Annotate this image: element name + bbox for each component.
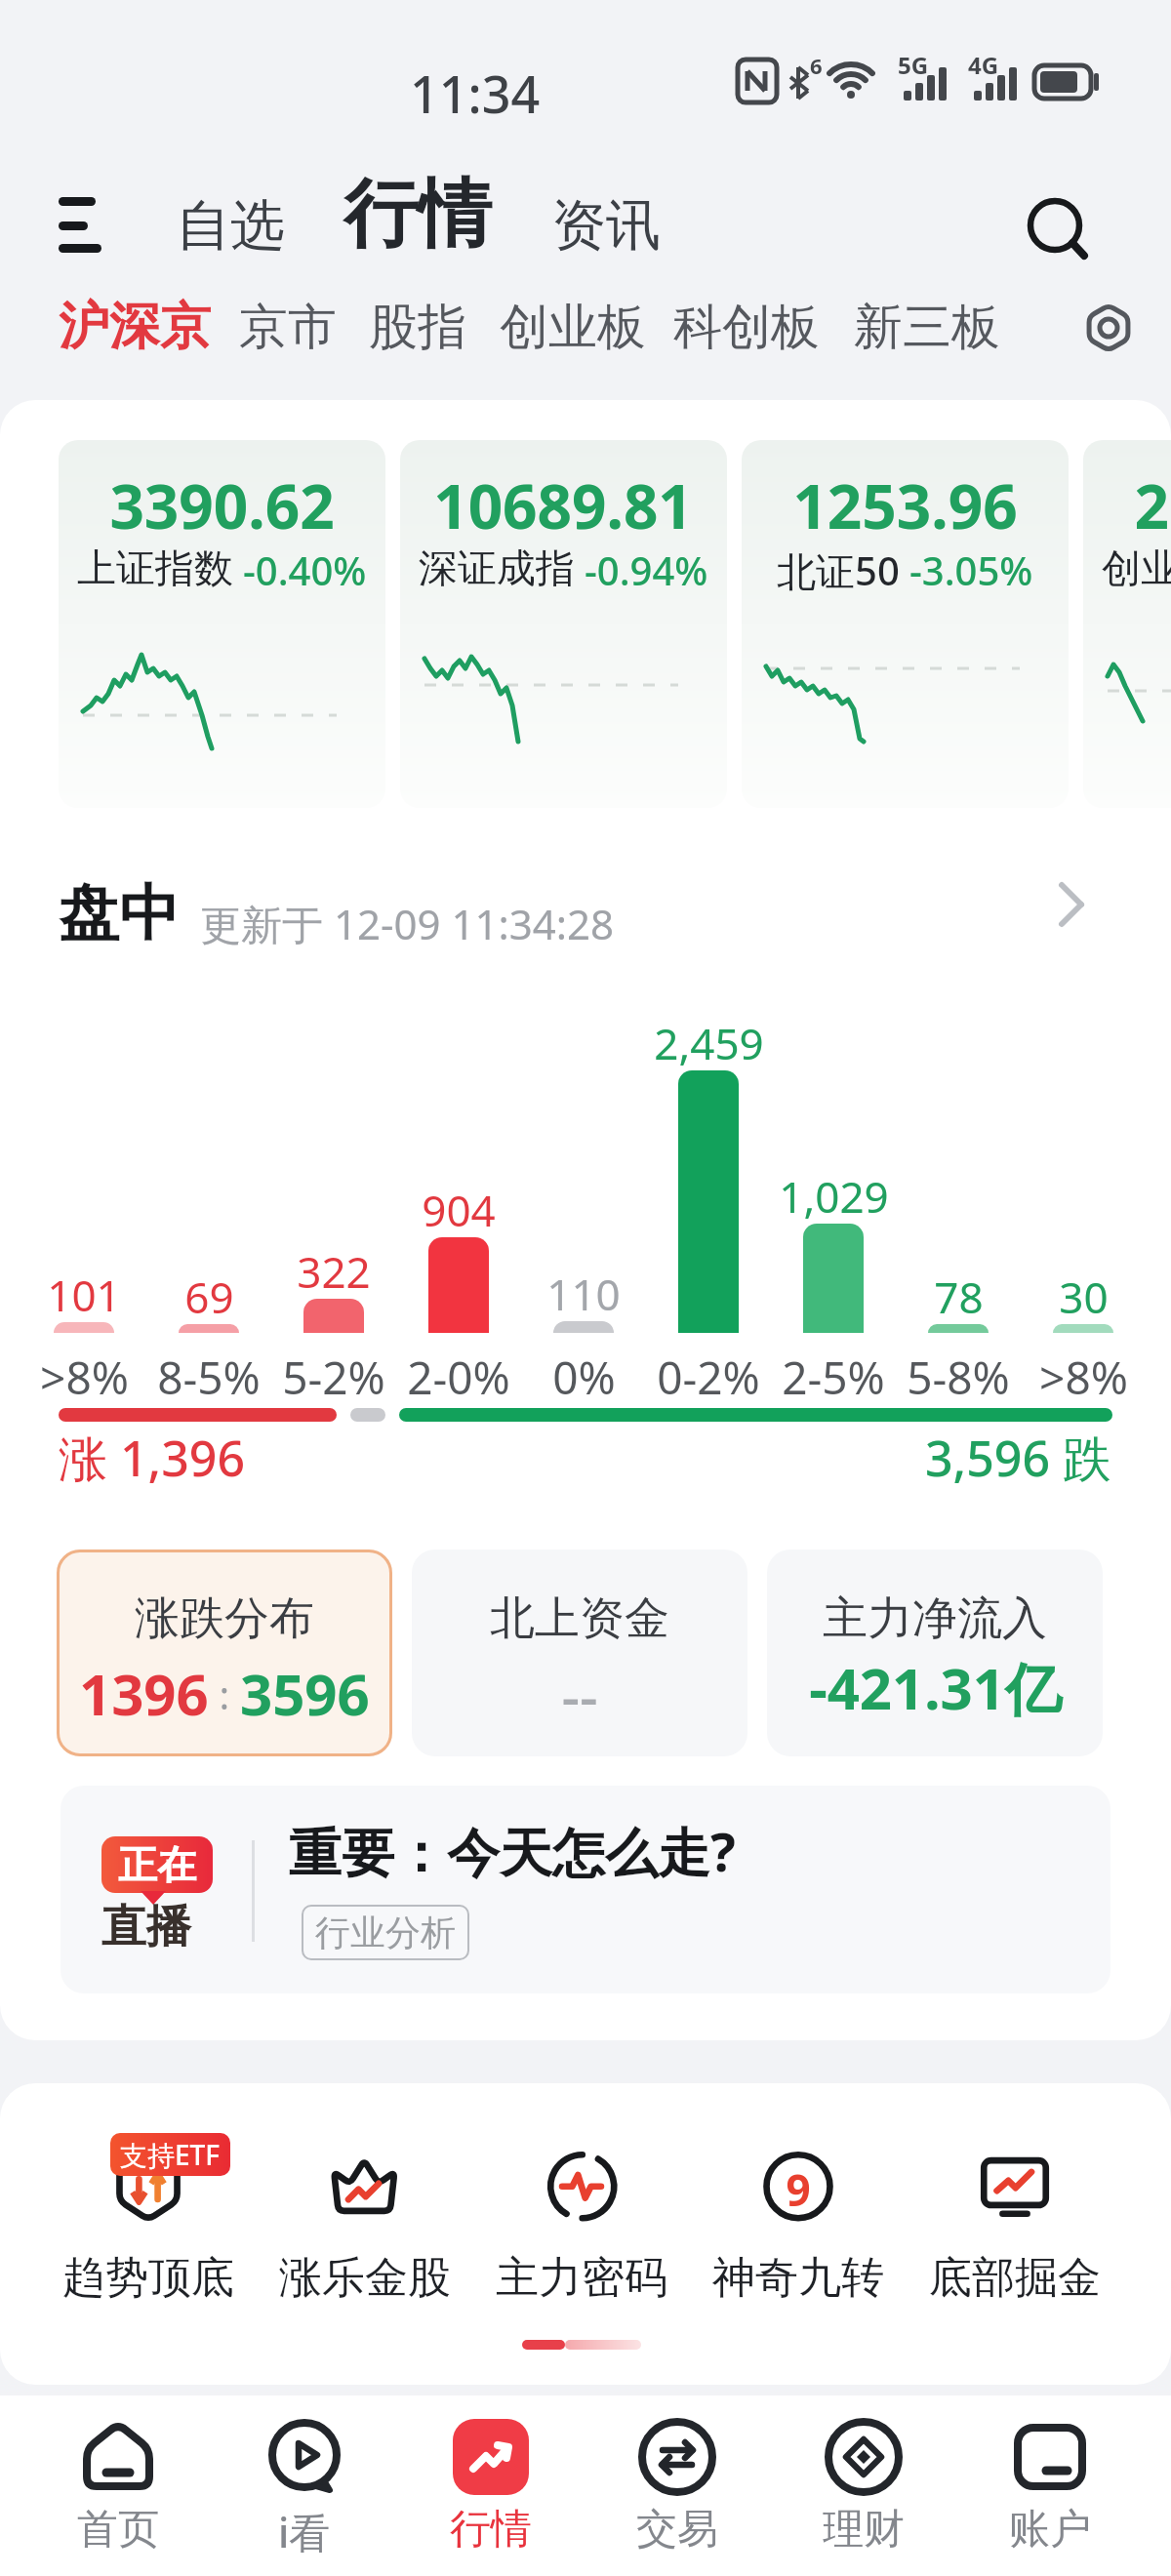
button[interactable]: 趋势顶底	[41, 2122, 256, 2356]
button[interactable]: 首页	[30, 2402, 206, 2573]
staticText: 5-2%	[282, 1347, 385, 1408]
staticText: 交易	[636, 2504, 718, 2556]
button[interactable]: 涨乐金股	[258, 2122, 472, 2356]
staticText: 1,029	[779, 1167, 889, 1226]
button[interactable]: 9	[691, 2122, 906, 2356]
button[interactable]: 1253.96	[742, 440, 1069, 808]
staticText: 2210.11	[1134, 464, 1171, 546]
staticText: 5-8%	[907, 1347, 1010, 1408]
button[interactable]	[1025, 195, 1091, 262]
staticText: 1396	[79, 1655, 209, 1732]
staticText: 创业板指	[1102, 543, 1171, 592]
staticText: i看	[278, 2504, 331, 2559]
staticText: -0.40%	[243, 543, 367, 596]
staticText: 上证指数	[77, 543, 233, 592]
staticText: 69	[184, 1268, 234, 1326]
staticText: 账户	[1009, 2504, 1091, 2556]
staticText: -421.31亿	[809, 1649, 1062, 1726]
staticText: 理财	[823, 2504, 905, 2556]
staticText: 直播	[101, 1899, 191, 1955]
staticText: 涨跌分布	[135, 1590, 314, 1647]
button[interactable]: 主力密码	[474, 2122, 689, 2356]
staticText: 11:34	[410, 59, 541, 128]
staticText: 趋势顶底	[62, 2251, 234, 2305]
staticText: 2,459	[654, 1014, 764, 1072]
staticText: 涨 1,396	[59, 1425, 246, 1491]
staticText: 5G	[898, 49, 929, 81]
button[interactable]: i看	[217, 2402, 392, 2573]
staticText: 正在	[118, 1840, 196, 1889]
staticText: 78	[934, 1268, 984, 1326]
button[interactable]: 行情	[403, 2402, 579, 2573]
staticText: 3596	[240, 1655, 370, 1732]
staticText: 110	[546, 1265, 621, 1323]
button[interactable]: 底部掘金	[908, 2122, 1122, 2356]
staticText: 0%	[552, 1347, 616, 1408]
staticText: 6	[810, 51, 823, 80]
staticText: -3.05%	[909, 543, 1033, 596]
staticText: 3390.62	[109, 464, 335, 546]
staticText: 神奇九转	[712, 2251, 884, 2305]
staticText: >8%	[1039, 1347, 1128, 1408]
staticText: 904	[422, 1181, 496, 1239]
staticText: 深证成指	[419, 543, 575, 592]
staticText: 101	[47, 1266, 121, 1324]
staticText: 更新于 12-09 11:34:28	[200, 896, 615, 951]
button[interactable]: 账户	[962, 2402, 1138, 2573]
staticText: 2-5%	[782, 1347, 885, 1408]
button[interactable]: 交易	[589, 2402, 765, 2573]
staticText: 首页	[77, 2504, 159, 2556]
button[interactable]	[1054, 883, 1093, 926]
staticText: 北证50	[777, 543, 900, 597]
button[interactable]: 正在	[61, 1786, 1110, 1993]
button[interactable]: 2210.11	[1083, 440, 1171, 808]
button[interactable]: 主力净流入	[767, 1550, 1103, 1756]
staticText: 10689.81	[433, 464, 693, 546]
staticText: 主力密码	[496, 2251, 667, 2305]
button[interactable]: 北上资金	[412, 1550, 747, 1756]
staticText: -0.94%	[585, 543, 708, 596]
staticText: >8%	[40, 1347, 129, 1408]
staticText: 3,596 跌	[925, 1425, 1112, 1491]
staticText: 北上资金	[490, 1590, 669, 1647]
staticText: 行业分析	[315, 1911, 456, 1954]
staticText: 1253.96	[792, 464, 1018, 546]
staticText: 8-5%	[157, 1347, 261, 1408]
staticText: 0-2%	[657, 1347, 760, 1408]
button[interactable]	[1085, 302, 1136, 353]
staticText: 9	[786, 2160, 811, 2219]
staticText: 重要：今天怎么走?	[289, 1815, 736, 1887]
button[interactable]: 理财	[776, 2402, 951, 2573]
staticText: --	[561, 1657, 598, 1734]
button[interactable]: 支持ETF	[120, 2136, 221, 2173]
staticText: 322	[297, 1242, 371, 1301]
staticText: 4G	[968, 49, 999, 81]
staticText: :	[209, 1668, 240, 1720]
staticText: 盘中	[59, 875, 180, 951]
button[interactable]: 3390.62	[59, 440, 385, 808]
staticText: 底部掘金	[929, 2251, 1101, 2305]
staticText: 行情	[450, 2504, 532, 2556]
staticText: 主力净流入	[823, 1590, 1047, 1647]
button[interactable]: 10689.81	[400, 440, 727, 808]
staticText: 2-0%	[407, 1347, 510, 1408]
staticText: 支持ETF	[120, 2136, 221, 2173]
button[interactable]	[57, 195, 103, 250]
staticText: 30	[1059, 1268, 1109, 1326]
button[interactable]: 涨跌分布	[57, 1550, 392, 1756]
staticText: 涨乐金股	[279, 2251, 451, 2305]
